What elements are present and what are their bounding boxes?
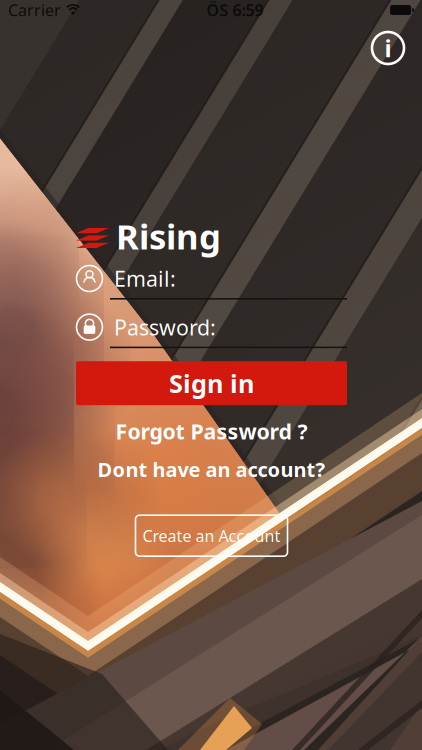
staticText: Rising — [116, 213, 221, 259]
staticText: Create an Account — [142, 525, 280, 546]
button[interactable]: Information — [366, 26, 410, 70]
button[interactable]: Sign in — [76, 361, 347, 405]
button[interactable]: Create an Account — [135, 515, 287, 556]
staticText: Sign in — [169, 366, 254, 400]
staticText: ÖS 6:59 — [206, 0, 263, 21]
staticText: Dont have an account? — [97, 456, 325, 482]
staticText: Forgot Password ? — [115, 417, 307, 445]
staticText: Email: — [114, 264, 176, 293]
staticText: i — [384, 32, 391, 64]
staticText: Password: — [114, 313, 216, 341]
staticText: Carrier — [8, 0, 61, 21]
button[interactable]: Forgot Password ? — [76, 413, 347, 449]
